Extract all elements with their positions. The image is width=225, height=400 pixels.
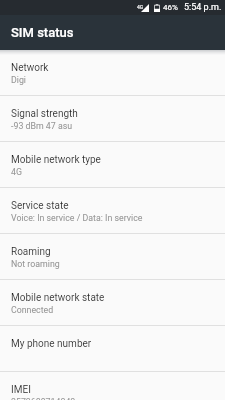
staticText: 5:54 p.m. [184,2,222,13]
staticText: 3573689714040 [11,397,76,400]
staticText: Connected [11,305,54,315]
staticText: Mobile network state [11,292,105,304]
staticText: 4G [137,4,144,10]
staticText: Digi [11,75,26,85]
staticText: Service state [11,200,69,212]
button[interactable]: Service state [0,188,225,233]
staticText: IMEI [11,384,31,396]
button[interactable]: My phone number [0,326,225,371]
button[interactable]: Mobile network state [0,280,225,325]
staticText: -93 dBm 47 asu [11,121,73,131]
button[interactable]: IMEI [0,372,225,400]
staticText: 4G [11,167,22,177]
staticText: Signal strength [11,108,78,120]
button[interactable]: SIM status [0,15,225,50]
staticText: Roaming [11,246,51,258]
staticText: Voice: In service / Data: In service [11,213,143,223]
staticText: 46% [163,3,178,12]
button[interactable]: Signal strength [0,96,225,141]
button[interactable]: Network [0,50,225,95]
staticText: SIM status [11,25,74,40]
button[interactable]: Roaming [0,234,225,279]
staticText: Mobile network type [11,154,101,166]
staticText: Not roaming [11,259,60,269]
staticText: Network [11,62,49,74]
button[interactable]: Mobile network type [0,142,225,187]
staticText: My phone number [11,338,92,350]
